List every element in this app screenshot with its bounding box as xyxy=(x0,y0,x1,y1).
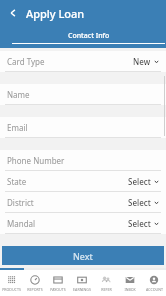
staticText: ACCOUNT xyxy=(146,287,163,292)
staticText: Card Type xyxy=(7,56,45,67)
staticText: Contact Info xyxy=(68,31,110,41)
staticText: PAYOUTS xyxy=(50,287,66,292)
staticText: Name xyxy=(7,89,30,100)
button[interactable]: Phone Number xyxy=(0,150,166,171)
button[interactable]: Back xyxy=(4,4,22,22)
button[interactable]: PAYOUTS xyxy=(46,270,70,296)
button[interactable]: PRODUCTS xyxy=(0,270,23,296)
staticText: REPORTS xyxy=(27,287,43,292)
button[interactable]: ACCOUNT xyxy=(142,270,166,296)
staticText: Apply Loan xyxy=(26,6,85,21)
staticText: INBOX xyxy=(124,287,136,292)
staticText: PRODUCTS xyxy=(2,287,21,292)
staticText: District xyxy=(7,197,34,208)
staticText: Next xyxy=(73,250,93,262)
button[interactable]: INBOX xyxy=(118,270,142,296)
button[interactable]: District xyxy=(0,192,166,213)
staticText: EARNINGS xyxy=(73,287,91,292)
button[interactable]: Next xyxy=(2,246,164,265)
button[interactable]: Card Type xyxy=(0,51,166,72)
button[interactable]: Email xyxy=(0,117,166,138)
staticText: Phone Number xyxy=(7,155,65,166)
button[interactable]: REPORTS xyxy=(23,270,46,296)
staticText: Select xyxy=(128,218,151,229)
button[interactable]: State xyxy=(0,171,166,192)
button[interactable]: Name xyxy=(0,84,166,105)
staticText: New xyxy=(133,56,151,67)
button[interactable]: EARNINGS xyxy=(70,270,94,296)
staticText: Mandal xyxy=(7,218,36,229)
staticText: Select xyxy=(128,197,151,208)
staticText: Email xyxy=(7,122,28,133)
staticText: REFER xyxy=(101,287,112,292)
button[interactable]: Mandal xyxy=(0,213,166,234)
staticText: State xyxy=(7,176,27,187)
staticText: Select xyxy=(128,176,151,187)
button[interactable]: Contact Info xyxy=(11,31,166,44)
button[interactable]: REFER xyxy=(94,270,118,296)
